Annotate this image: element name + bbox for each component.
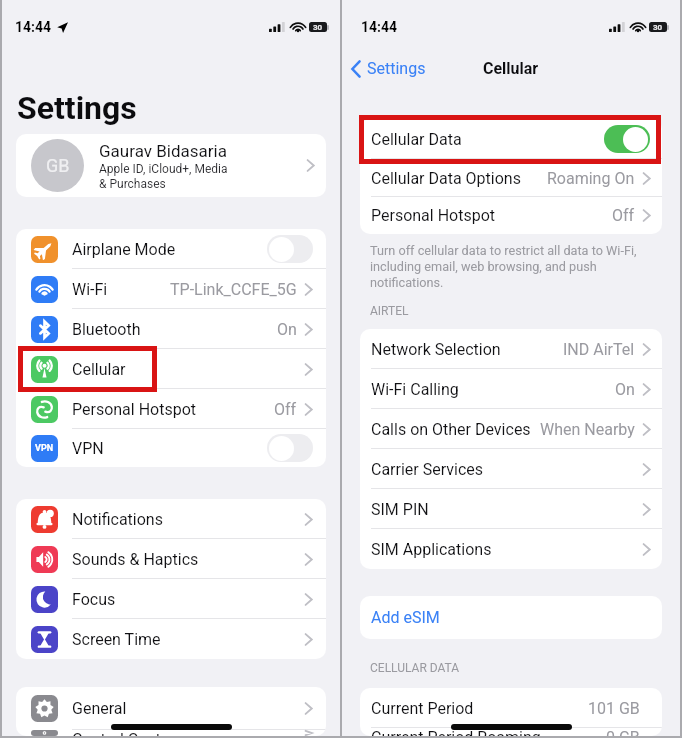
button[interactable]: Cellular <box>16 349 326 389</box>
staticText: On <box>277 320 297 339</box>
staticText: Wi-Fi Calling <box>371 380 459 399</box>
staticText: Cellular <box>72 360 126 379</box>
staticText: Network Selection <box>371 340 501 359</box>
button[interactable]: SIM PIN <box>360 489 662 529</box>
staticText: Roaming On <box>547 169 635 188</box>
button[interactable]: Sounds & Haptics <box>16 539 326 579</box>
staticText: 30 <box>313 23 323 32</box>
staticText: Screen Time <box>72 630 161 649</box>
staticText: GB <box>46 155 70 176</box>
staticText: Off <box>274 400 297 419</box>
staticText: On <box>615 380 635 399</box>
staticText: Gaurav Bidasaria <box>99 141 227 161</box>
staticText: Control Center <box>72 730 175 736</box>
button[interactable]: Personal Hotspot <box>16 389 326 429</box>
button[interactable]: Personal Hotspot <box>360 197 662 234</box>
staticText: Personal Hotspot <box>371 206 496 225</box>
staticText: 14:44 <box>361 19 398 35</box>
button[interactable]: Toggle off <box>267 235 313 263</box>
staticText: Airplane Mode <box>72 240 176 259</box>
button[interactable]: Wi-Fi Calling <box>360 369 662 409</box>
staticText: 30 <box>653 23 663 32</box>
staticText: General <box>72 699 127 718</box>
button[interactable]: Current Period Roaming <box>360 728 662 736</box>
staticText: Carrier Services <box>371 460 484 479</box>
staticText: Cellular <box>483 59 539 78</box>
staticText: CELLULAR DATA <box>370 661 460 675</box>
button[interactable]: Focus <box>16 579 326 619</box>
button[interactable]: Wi-Fi <box>16 269 326 309</box>
button[interactable]: Bluetooth <box>16 309 326 349</box>
button[interactable]: Toggle off <box>267 434 313 462</box>
button[interactable]: Network Selection <box>360 329 662 369</box>
button[interactable]: Toggle on <box>604 125 650 153</box>
staticText: AIRTEL <box>370 304 409 318</box>
button[interactable]: VPN <box>16 429 326 467</box>
button[interactable]: Control Center <box>16 730 326 736</box>
staticText: 0 GB <box>606 728 640 736</box>
staticText: Apple ID, iCloud+, Media & Purchases <box>99 162 228 191</box>
staticText: Bluetooth <box>72 320 141 339</box>
staticText: SIM PIN <box>371 500 429 519</box>
button[interactable]: Settings <box>348 55 429 82</box>
staticText: Settings <box>367 59 426 78</box>
staticText: Calls on Other Devices <box>371 420 531 439</box>
button[interactable]: Airplane Mode <box>16 229 326 269</box>
staticText: TP-Link_CCFE_5G <box>170 280 297 299</box>
button[interactable]: SIM Applications <box>360 529 662 569</box>
button[interactable]: Cellular Data Options <box>360 159 662 197</box>
staticText: SIM Applications <box>371 540 492 559</box>
staticText: Settings <box>17 89 137 127</box>
staticText: Off <box>612 206 635 225</box>
button[interactable]: Notifications <box>16 499 326 539</box>
staticText: Add eSIM <box>371 608 440 627</box>
button[interactable]: Current Period <box>360 688 662 728</box>
button[interactable]: General <box>16 687 326 730</box>
staticText: Current Period <box>371 699 474 718</box>
staticText: Wi-Fi <box>72 280 108 299</box>
staticText: Notifications <box>72 510 163 529</box>
button[interactable]: GB <box>16 134 326 197</box>
staticText: Cellular Data Options <box>371 169 521 188</box>
button[interactable]: Carrier Services <box>360 449 662 489</box>
staticText: IND AirTel <box>563 340 635 359</box>
staticText: Personal Hotspot <box>72 400 197 419</box>
button[interactable]: Calls on Other Devices <box>360 409 662 449</box>
staticText: Sounds & Haptics <box>72 550 199 569</box>
staticText: VPN <box>35 443 54 454</box>
staticText: Turn off cellular data to restrict all d… <box>370 243 648 290</box>
button[interactable]: Cellular Data <box>360 119 662 159</box>
button[interactable]: Screen Time <box>16 619 326 659</box>
staticText: When Nearby <box>540 420 635 439</box>
staticText: 14:44 <box>15 19 52 35</box>
staticText: Current Period Roaming <box>371 728 541 736</box>
staticText: 101 GB <box>588 699 640 718</box>
staticText: VPN <box>72 439 104 458</box>
staticText: Focus <box>72 590 116 609</box>
button[interactable]: Add eSIM <box>360 596 662 639</box>
staticText: Cellular Data <box>371 130 462 149</box>
